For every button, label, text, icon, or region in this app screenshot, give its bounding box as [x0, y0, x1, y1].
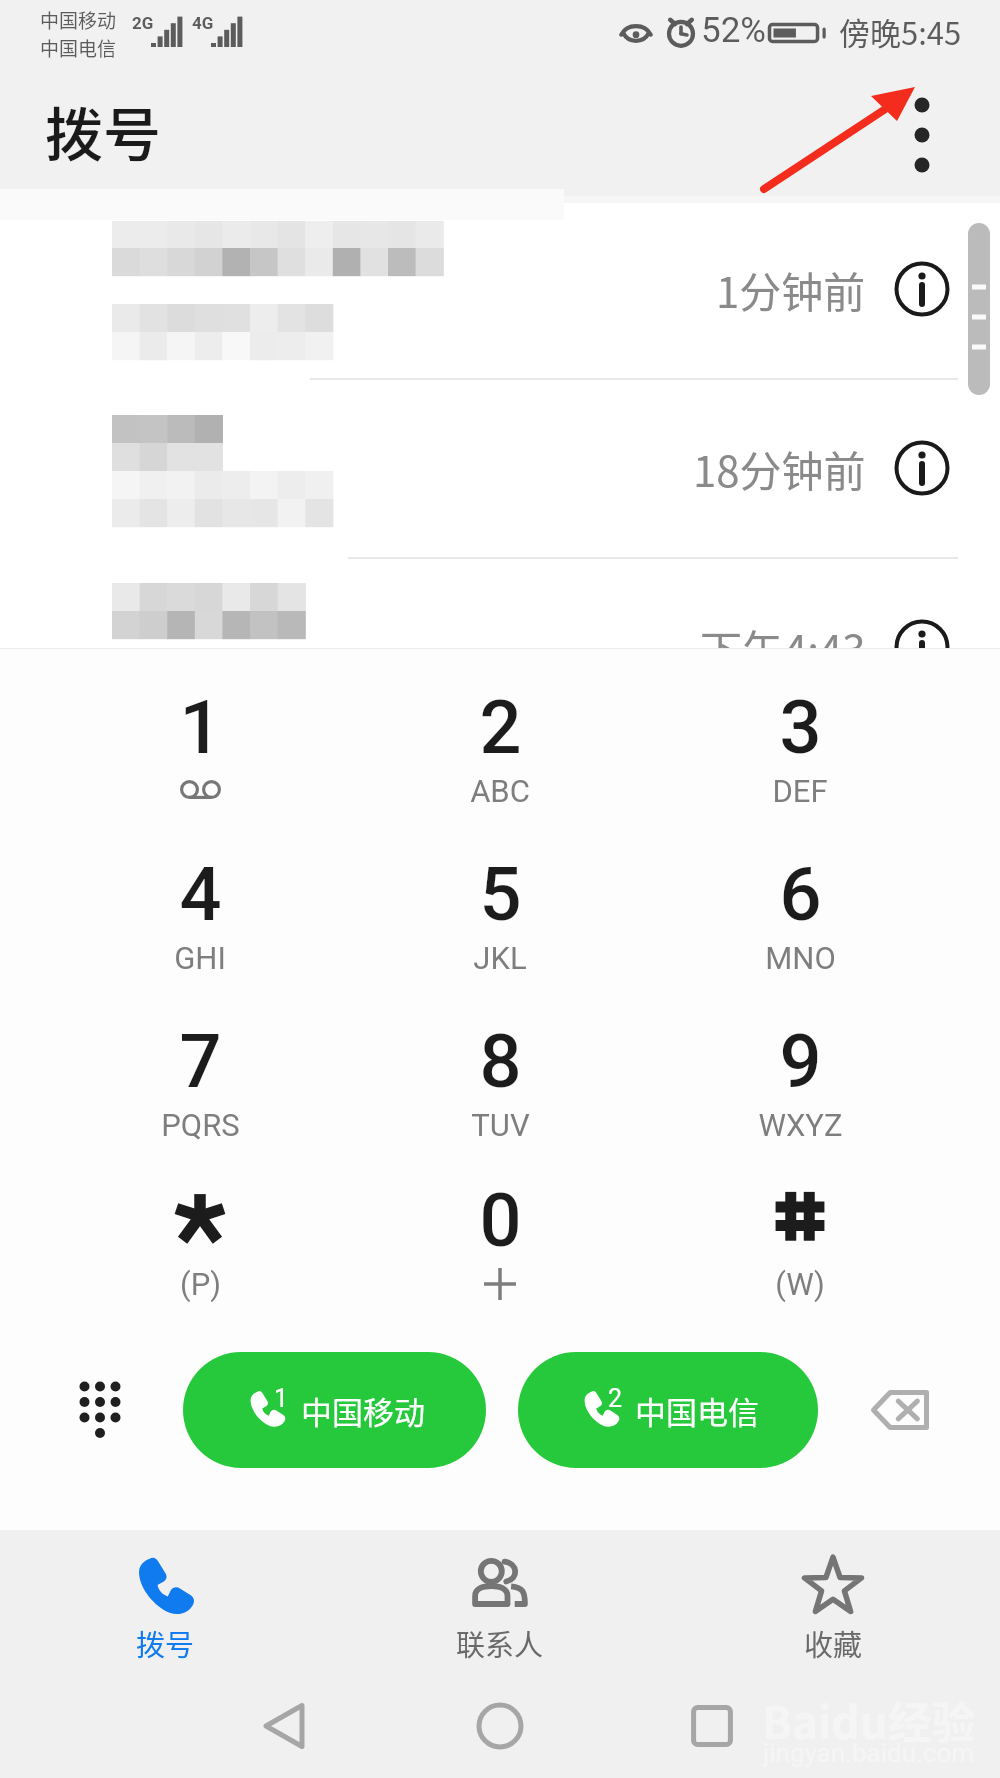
button[interactable]: Pound key — [675, 1160, 925, 1320]
staticText: 收藏 — [804, 1622, 863, 1664]
button[interactable]: Call details — [894, 619, 950, 675]
staticText: 9 — [779, 1018, 822, 1105]
button[interactable]: Key 4 — [75, 834, 325, 994]
staticText: 联系人 — [456, 1622, 544, 1664]
staticText: 52% — [701, 10, 766, 51]
button[interactable]: 1 — [183, 1352, 486, 1468]
button[interactable]: 联系人 — [390, 1530, 610, 1680]
button[interactable]: Hide keypad — [62, 1372, 138, 1448]
button[interactable]: Call log entry, 18分钟前 — [0, 379, 1000, 558]
button[interactable]: Call log entry, 下午4:43 — [0, 558, 1000, 649]
staticText: ABC — [470, 773, 530, 809]
button[interactable]: 2 — [518, 1352, 818, 1468]
staticText: DEF — [772, 773, 828, 809]
staticText: 拨号 — [45, 89, 162, 173]
button[interactable]: Call details — [894, 440, 950, 496]
staticText: 2 — [608, 1384, 623, 1413]
staticText: 下午4:43 — [700, 617, 866, 675]
staticText: 7 — [179, 1018, 222, 1105]
staticText: 2 — [479, 684, 522, 771]
button[interactable]: Key 7 — [75, 1001, 325, 1161]
button[interactable]: Key 8 — [375, 1001, 625, 1161]
staticText: TUV — [471, 1107, 530, 1143]
button[interactable]: Backspace — [862, 1372, 938, 1448]
button[interactable]: 下午4:43 — [600, 617, 960, 675]
button[interactable]: Key 1 — [75, 667, 325, 827]
staticText: 0 — [479, 1177, 522, 1264]
button[interactable]: 拨号 — [55, 1530, 275, 1680]
button[interactable]: More options — [886, 99, 958, 171]
button[interactable]: Key 5 — [375, 834, 625, 994]
staticText: 6 — [779, 851, 822, 938]
staticText: 中国移动 — [40, 6, 117, 34]
button[interactable]: Call log entry, 1分钟前 — [0, 193, 1000, 379]
staticText: PQRS — [161, 1107, 240, 1143]
button[interactable]: 18分钟前 — [600, 438, 960, 496]
staticText: 4G — [192, 13, 214, 33]
staticText: 中国移动 — [301, 1388, 425, 1433]
staticText: GHI — [174, 940, 226, 976]
button[interactable]: Home — [455, 1681, 545, 1771]
staticText: 3 — [779, 684, 822, 771]
staticText: 1 — [274, 1384, 289, 1413]
staticText: 5 — [479, 851, 522, 938]
staticText: 傍晚5:45 — [839, 9, 962, 54]
button[interactable]: Recents — [667, 1681, 757, 1771]
staticText: 2G — [132, 13, 154, 33]
staticText: (P) — [180, 1266, 221, 1302]
staticText: 中国电信 — [40, 34, 117, 62]
staticText: 中国电信 — [635, 1388, 759, 1433]
staticText: MNO — [765, 940, 836, 976]
button[interactable]: 收藏 — [723, 1530, 943, 1680]
button[interactable]: Back — [240, 1681, 330, 1771]
staticText: 18分钟前 — [693, 438, 866, 496]
button[interactable]: Star key — [75, 1160, 325, 1320]
button[interactable]: Key 3 — [675, 667, 925, 827]
staticText: 8 — [479, 1018, 522, 1105]
button[interactable]: Call details — [894, 261, 950, 317]
button[interactable]: Key 2 — [375, 667, 625, 827]
staticText: JKL — [473, 940, 527, 976]
staticText: 拨号 — [136, 1622, 195, 1664]
button[interactable]: 1分钟前 — [600, 259, 960, 317]
staticText: (W) — [775, 1266, 825, 1302]
staticText: WXYZ — [758, 1107, 843, 1143]
button[interactable]: Key 9 — [675, 1001, 925, 1161]
staticText: 1 — [179, 684, 222, 771]
button[interactable]: Key 0 — [375, 1160, 625, 1320]
button[interactable]: Key 6 — [675, 834, 925, 994]
staticText: 1分钟前 — [716, 259, 866, 317]
staticText: 4 — [179, 851, 222, 938]
